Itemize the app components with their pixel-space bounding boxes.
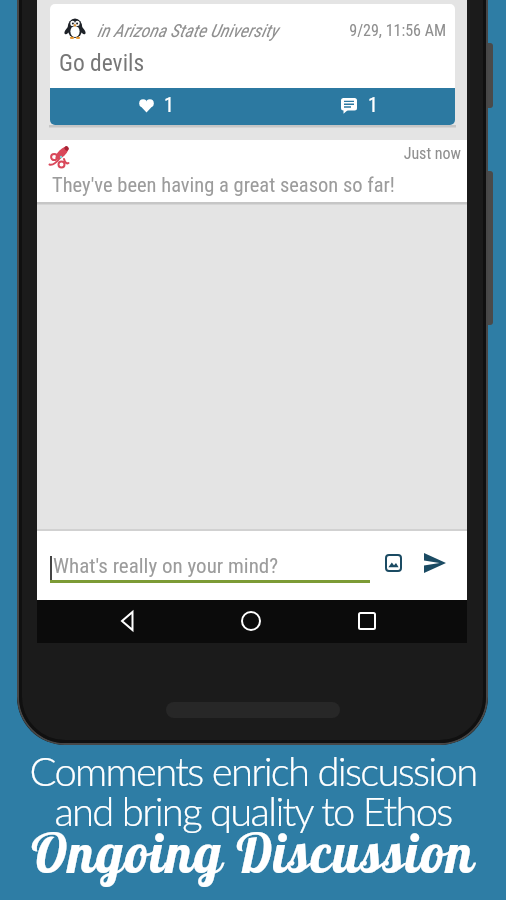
staticText: They've been having a great season so fa… [52,173,395,197]
button[interactable]: in Arizona State University [50,4,455,125]
staticText: Comments enrich discussion [0,747,506,795]
button[interactable] [383,552,405,574]
staticText: 1 [368,93,378,116]
staticText: 9/29, 11:56 AM [290,21,446,40]
staticText: 1 [164,93,174,116]
staticText: Ongoing Discussion [0,819,506,887]
button[interactable] [238,608,264,634]
staticText: in Arizona State University [97,20,278,41]
staticText: and bring quality to Ethos [0,787,506,835]
button[interactable] [422,551,448,575]
button[interactable]: What's really on your mind? [53,554,279,579]
button[interactable]: Just now [37,140,467,202]
staticText: Just now [361,144,461,163]
button[interactable] [115,608,141,634]
button[interactable]: 1 [328,88,429,125]
button[interactable]: 1 [126,88,227,125]
button[interactable] [354,608,380,634]
staticText: Go devils [59,49,145,77]
